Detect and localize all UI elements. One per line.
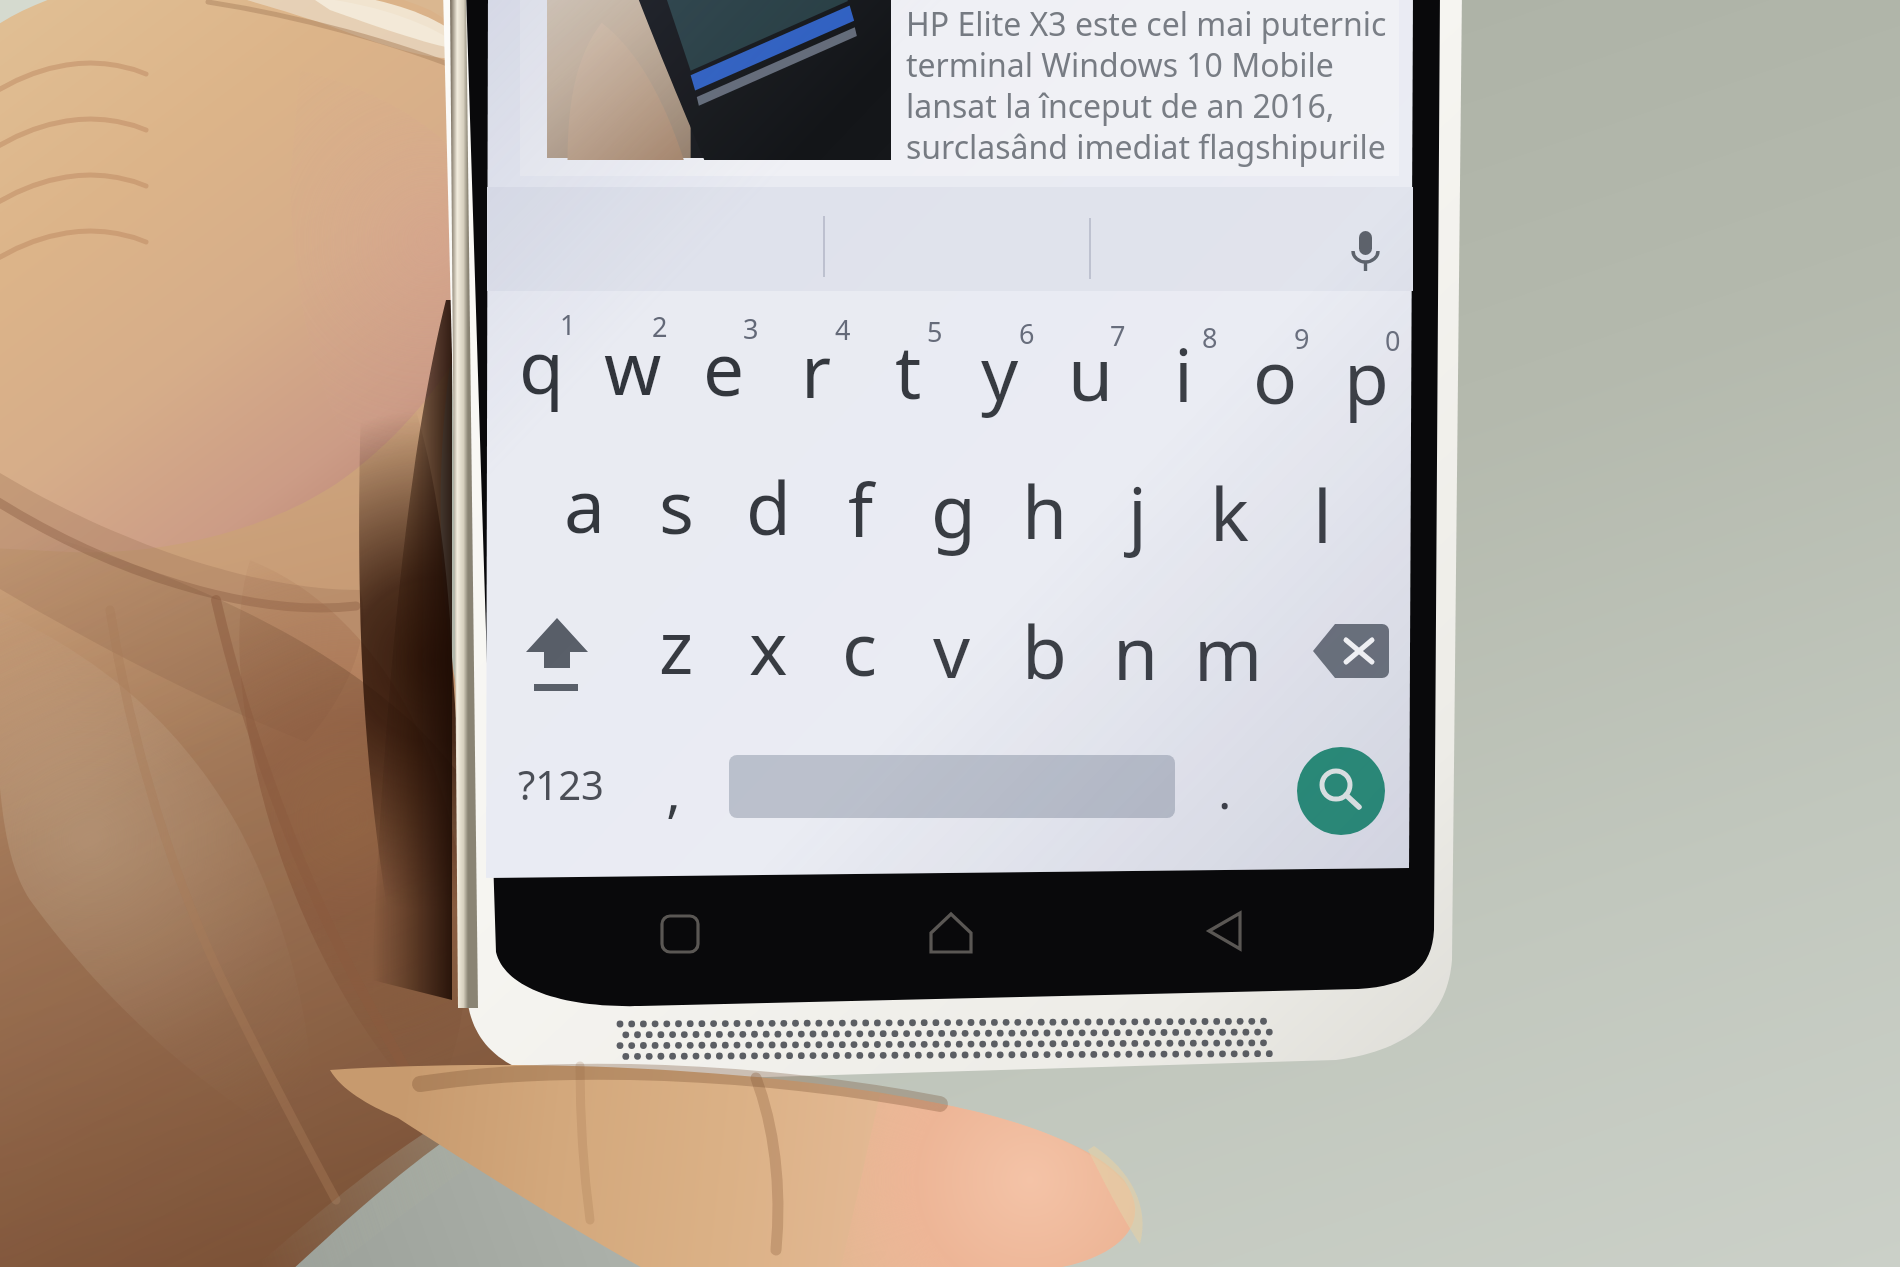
button[interactable]: n <box>1091 591 1181 711</box>
staticText: j <box>1128 462 1147 561</box>
button[interactable]: r <box>771 309 861 429</box>
staticText: h <box>1022 461 1068 560</box>
staticText: p <box>1344 327 1389 426</box>
button[interactable]: Voice input <box>1346 228 1386 278</box>
button[interactable]: z <box>631 585 721 705</box>
staticText: s <box>659 456 694 555</box>
staticText: x <box>749 597 788 696</box>
button[interactable]: q <box>496 305 586 425</box>
button[interactable]: Shift <box>510 606 606 706</box>
button[interactable]: y <box>955 311 1045 431</box>
button[interactable]: k <box>1184 452 1274 572</box>
staticText: v <box>933 600 971 699</box>
button[interactable]: d <box>723 446 813 566</box>
staticText: z <box>659 596 694 695</box>
staticText: surclasând imediat flagshipurile <box>906 125 1386 169</box>
button[interactable]: g <box>908 449 998 569</box>
button[interactable]: s <box>631 445 721 565</box>
staticText: 2 <box>652 308 668 345</box>
button[interactable]: Backspace <box>1313 622 1389 680</box>
staticText: a <box>564 455 605 554</box>
button[interactable]: m <box>1183 592 1273 712</box>
button[interactable]: a <box>539 444 629 564</box>
staticText: HP Elite X3 este cel mai puternic <box>906 2 1387 46</box>
staticText: 8 <box>1202 319 1218 356</box>
staticText: y <box>981 322 1019 421</box>
staticText: c <box>842 598 878 697</box>
staticText: r <box>801 320 832 419</box>
staticText: n <box>1113 602 1159 701</box>
button[interactable]: x <box>723 586 813 706</box>
staticText: ?123 <box>518 757 604 811</box>
staticText: k <box>1210 463 1249 562</box>
staticText: e <box>703 318 745 417</box>
button[interactable]: v <box>907 589 997 709</box>
staticText: . <box>1218 756 1232 824</box>
button[interactable]: ?123 <box>508 742 613 826</box>
button[interactable]: l <box>1277 454 1367 574</box>
staticText: 3 <box>743 310 759 347</box>
button[interactable]: t <box>863 310 953 430</box>
staticText: terminal Windows 10 Mobile <box>906 43 1334 87</box>
button[interactable]: b <box>999 590 1089 710</box>
button[interactable]: j <box>1092 451 1182 571</box>
button[interactable]: p <box>1321 316 1411 436</box>
staticText: 6 <box>1019 315 1035 352</box>
staticText: g <box>931 460 976 559</box>
staticText: m <box>1194 603 1263 702</box>
button[interactable]: Space <box>729 755 1175 818</box>
staticText: lansat la început de an 2016, <box>906 84 1335 128</box>
staticText: f <box>848 459 874 558</box>
button[interactable]: f <box>816 448 906 568</box>
button[interactable]: u <box>1046 312 1136 432</box>
staticText: i <box>1174 324 1193 423</box>
staticText: d <box>746 457 791 556</box>
staticText: o <box>1253 326 1298 425</box>
button[interactable]: h <box>1000 450 1090 570</box>
staticText: b <box>1022 601 1067 700</box>
staticText: w <box>604 317 662 416</box>
staticText: u <box>1068 323 1114 422</box>
staticText: 9 <box>1294 320 1310 357</box>
staticText: 7 <box>1110 317 1126 354</box>
staticText: 5 <box>927 313 943 350</box>
button[interactable] <box>520 0 1399 176</box>
button[interactable]: c <box>815 587 905 707</box>
staticText: t <box>895 321 922 420</box>
button[interactable]: w <box>588 306 678 426</box>
button[interactable]: i <box>1138 313 1228 433</box>
button[interactable]: e <box>679 307 769 427</box>
staticText: 0 <box>1385 322 1401 359</box>
staticText: q <box>519 316 564 415</box>
staticText: 1 <box>560 306 576 343</box>
staticText: 4 <box>835 311 851 348</box>
staticText: l <box>1313 465 1332 564</box>
staticText: , <box>666 752 682 828</box>
button[interactable]: o <box>1230 315 1320 435</box>
button[interactable]: . <box>1192 742 1258 838</box>
button[interactable]: , <box>638 742 710 838</box>
button[interactable]: Search <box>1297 747 1385 835</box>
